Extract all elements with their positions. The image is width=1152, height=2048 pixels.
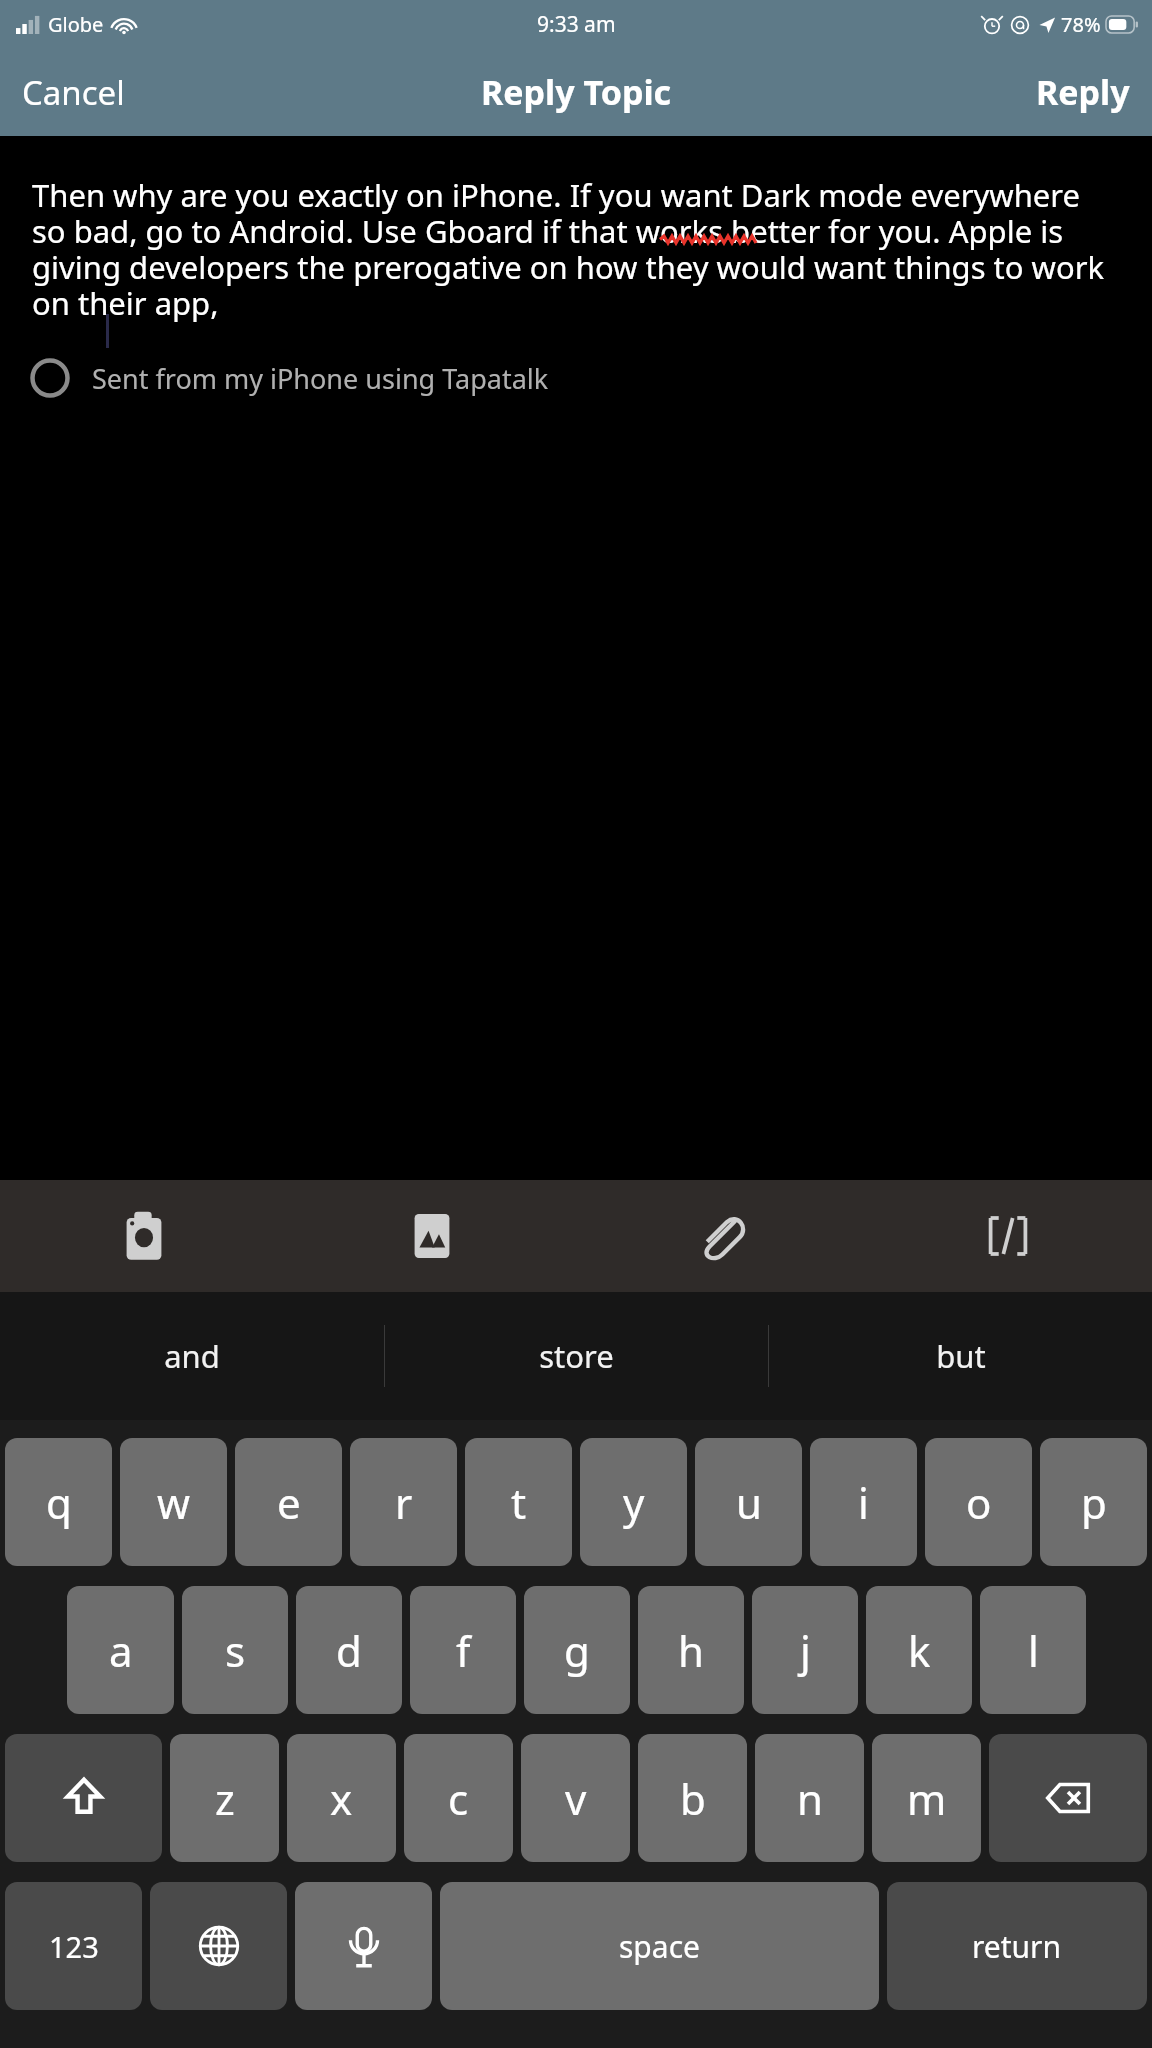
staticText: h: [678, 1622, 704, 1679]
staticText: but: [936, 1335, 986, 1377]
button[interactable]: g: [524, 1586, 630, 1714]
staticText: w: [157, 1474, 191, 1531]
staticText: k: [908, 1622, 931, 1679]
staticText: q: [46, 1474, 72, 1531]
staticText: v: [565, 1770, 587, 1827]
button[interactable]: Sent from my iPhone using Tapatalk: [0, 352, 1152, 404]
staticText: j: [800, 1622, 811, 1679]
staticText: return: [972, 1926, 1062, 1967]
button[interactable]: j: [752, 1586, 858, 1714]
button[interactable]: w: [120, 1438, 227, 1566]
button[interactable]: l: [980, 1586, 1086, 1714]
button[interactable]: d: [296, 1586, 402, 1714]
button[interactable]: 123: [5, 1882, 142, 2010]
button[interactable]: s: [182, 1586, 288, 1714]
button[interactable]: but: [769, 1292, 1152, 1420]
button[interactable]: e: [235, 1438, 342, 1566]
staticText: e: [277, 1474, 301, 1531]
button[interactable]: q: [5, 1438, 112, 1566]
button[interactable]: b: [638, 1734, 747, 1862]
button[interactable]: space: [440, 1882, 879, 2010]
button[interactable]: o: [925, 1438, 1032, 1566]
staticText: store: [539, 1335, 614, 1377]
button[interactable]: Reply: [1014, 55, 1152, 129]
staticText: o: [966, 1474, 992, 1531]
staticText: x: [330, 1770, 353, 1827]
button[interactable]: p: [1040, 1438, 1147, 1566]
staticText: 78%: [1061, 11, 1101, 38]
button[interactable]: Change keyboard: [150, 1882, 287, 2010]
button[interactable]: v: [521, 1734, 630, 1862]
button[interactable]: Cancel: [0, 56, 147, 129]
button[interactable]: c: [404, 1734, 513, 1862]
button[interactable]: u: [695, 1438, 802, 1566]
staticText: g: [564, 1622, 590, 1679]
button[interactable]: h: [638, 1586, 744, 1714]
button[interactable]: m: [872, 1734, 981, 1862]
staticText: d: [336, 1622, 362, 1679]
staticText: s: [225, 1622, 246, 1679]
staticText: Cancel: [22, 70, 125, 115]
staticText: c: [448, 1770, 469, 1827]
staticText: 9:33 am: [537, 10, 616, 39]
button[interactable]: Voice input: [295, 1882, 432, 2010]
staticText: p: [1081, 1474, 1107, 1531]
button[interactable]: Insert image: [288, 1180, 576, 1292]
staticText: m: [907, 1770, 947, 1827]
staticText: Reply Topic: [481, 69, 672, 115]
staticText: l: [1028, 1622, 1039, 1679]
staticText: f: [456, 1622, 471, 1679]
button[interactable]: r: [350, 1438, 457, 1566]
button[interactable]: y: [580, 1438, 687, 1566]
staticText: u: [736, 1474, 762, 1531]
staticText: t: [511, 1474, 527, 1531]
staticText: 123: [49, 1927, 99, 1966]
button[interactable]: return: [887, 1882, 1147, 2010]
staticText: n: [797, 1770, 823, 1827]
staticText: i: [858, 1474, 869, 1531]
button[interactable]: Backspace: [989, 1734, 1147, 1862]
staticText: z: [215, 1770, 235, 1827]
button[interactable]: t: [465, 1438, 572, 1566]
staticText: space: [619, 1926, 700, 1967]
staticText: y: [623, 1474, 645, 1531]
staticText: Reply: [1036, 69, 1130, 115]
staticText: a: [109, 1622, 133, 1679]
button[interactable]: z: [170, 1734, 279, 1862]
button[interactable]: x: [287, 1734, 396, 1862]
button[interactable]: store: [385, 1292, 768, 1420]
button[interactable]: f: [410, 1586, 516, 1714]
button[interactable]: Attach file: [576, 1180, 864, 1292]
button[interactable]: a: [67, 1586, 174, 1714]
staticText: Globe: [48, 11, 104, 38]
button[interactable]: Shift: [5, 1734, 162, 1862]
staticText: r: [395, 1474, 413, 1531]
staticText: and: [164, 1335, 220, 1377]
button[interactable]: and: [0, 1292, 384, 1420]
staticText: Then why are you exactly on iPhone. If y…: [32, 174, 1120, 324]
button[interactable]: i: [810, 1438, 917, 1566]
button[interactable]: n: [755, 1734, 864, 1862]
button[interactable]: Take photo: [0, 1180, 288, 1292]
button[interactable]: k: [866, 1586, 972, 1714]
staticText: b: [680, 1770, 706, 1827]
button[interactable]: Insert code: [864, 1180, 1152, 1292]
staticText: Sent from my iPhone using Tapatalk: [92, 360, 549, 397]
